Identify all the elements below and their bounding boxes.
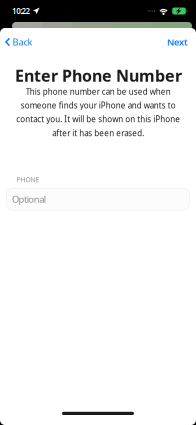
button[interactable]: Back [0,32,40,52]
button[interactable]: Next [159,32,196,52]
staticText: This phone number can be used when someo… [16,86,180,138]
button[interactable]: Optional [6,188,189,210]
staticText: Enter Phone Number [15,65,182,86]
staticText: Optional [12,193,46,205]
staticText: Next [167,36,188,48]
staticText: PHONE [16,175,39,184]
staticText: Back [12,36,32,48]
staticText: 10:22 [12,6,31,16]
